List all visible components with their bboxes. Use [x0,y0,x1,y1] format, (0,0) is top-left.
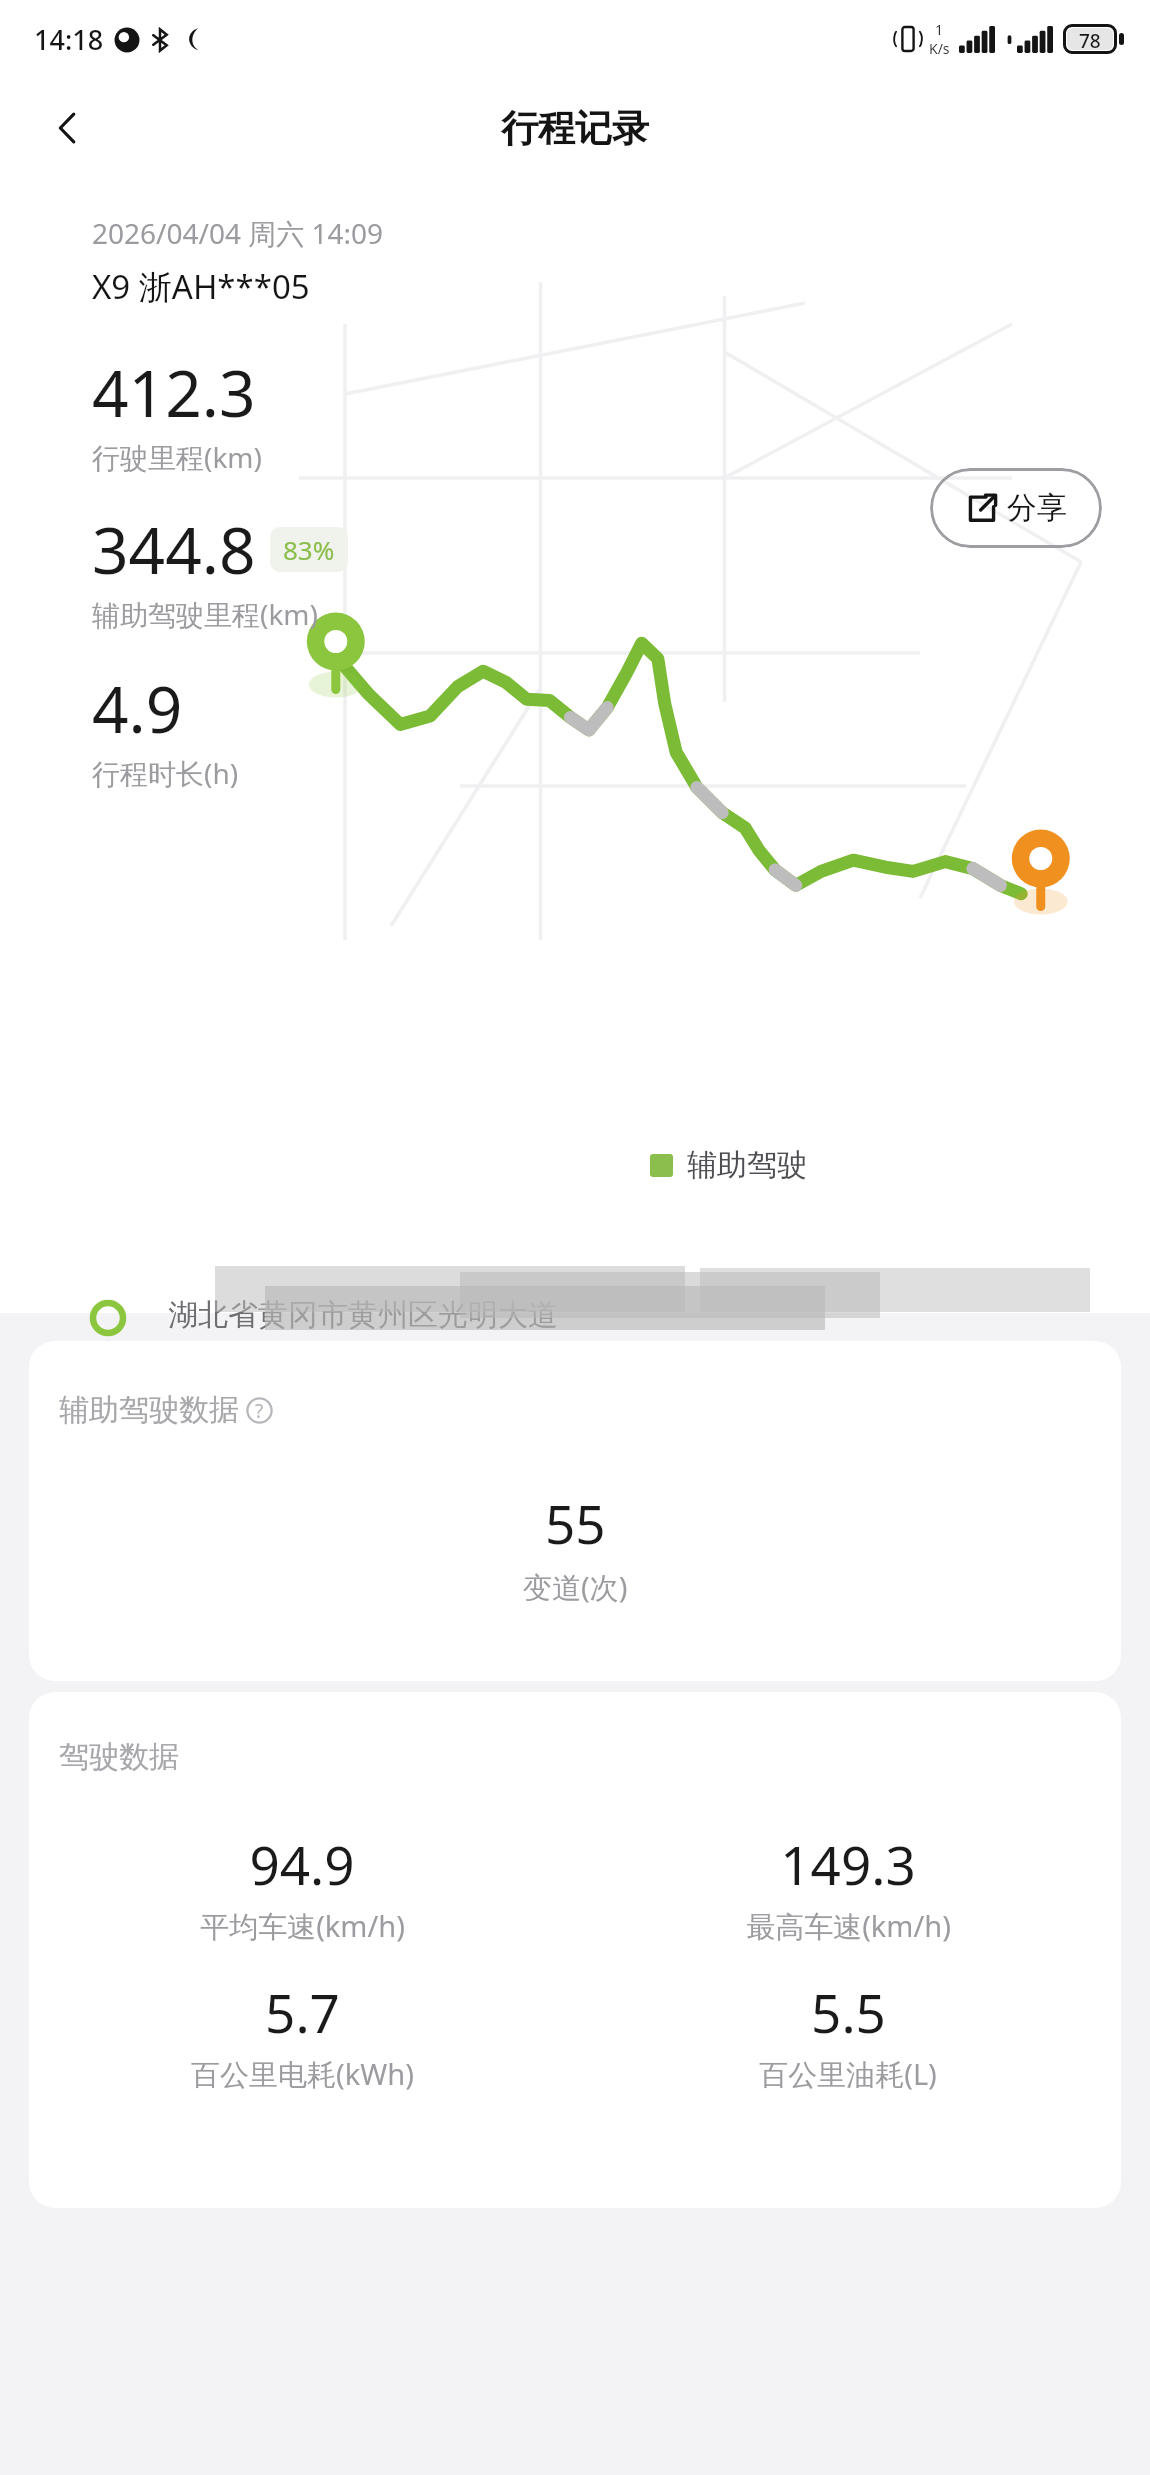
staticText: 5.5 [811,1976,886,2048]
staticText: 行程时长(h) [92,754,239,792]
staticText: 百公里电耗(kWh) [191,2054,414,2094]
staticText: 安徽省芜湖市弋江区振兴路 [168,1386,528,1424]
button[interactable]: 驾驶数据 [29,1692,1121,2208]
staticText: 83% [283,532,335,567]
button[interactable]: 辅助驾驶数据 [29,1341,1121,1681]
staticText: 辅助驾驶 [687,1146,807,1184]
staticText: K/s [929,39,950,58]
staticText: 344.8 [92,506,256,593]
staticText: 百公里油耗(L) [759,2054,937,2094]
button[interactable]: 辅助驾驶 [650,1146,807,1184]
staticText: 78 [1079,28,1101,50]
staticText: 变道(次) [523,1567,628,1607]
staticText: 4.9 [92,665,183,752]
staticText: 2026/04/04 周六 14:09 [92,214,384,252]
staticText: 55 [545,1487,606,1559]
staticText: 辅助驾驶里程(km) [92,595,318,633]
button[interactable]: 分享 [930,468,1102,548]
staticText: 412.3 [92,349,256,436]
staticText: 14:18 [34,21,104,58]
staticText: 1 [935,20,944,39]
staticText: 辅助驾驶数据 [59,1391,239,1429]
staticText: 平均车速(km/h) [200,1906,405,1946]
staticText: 94.9 [249,1828,355,1900]
staticText: ? [255,1398,264,1424]
button[interactable]: Back [36,96,100,160]
staticText: 149.3 [780,1828,916,1900]
staticText: 最高车速(km/h) [746,1906,951,1946]
staticText: 5.7 [265,1976,340,2048]
staticText: 行程记录 [501,105,649,152]
button[interactable]: 湖北省黄冈市黄州区光明大道 [0,1248,1150,1428]
staticText: 驾驶数据 [59,1738,179,1776]
staticText: X9 浙AH***05 [92,264,310,309]
staticText: 湖北省黄冈市黄州区光明大道 [168,1296,558,1334]
staticText: 行驶里程(km) [92,438,262,476]
staticText: 分享 [1007,489,1067,527]
